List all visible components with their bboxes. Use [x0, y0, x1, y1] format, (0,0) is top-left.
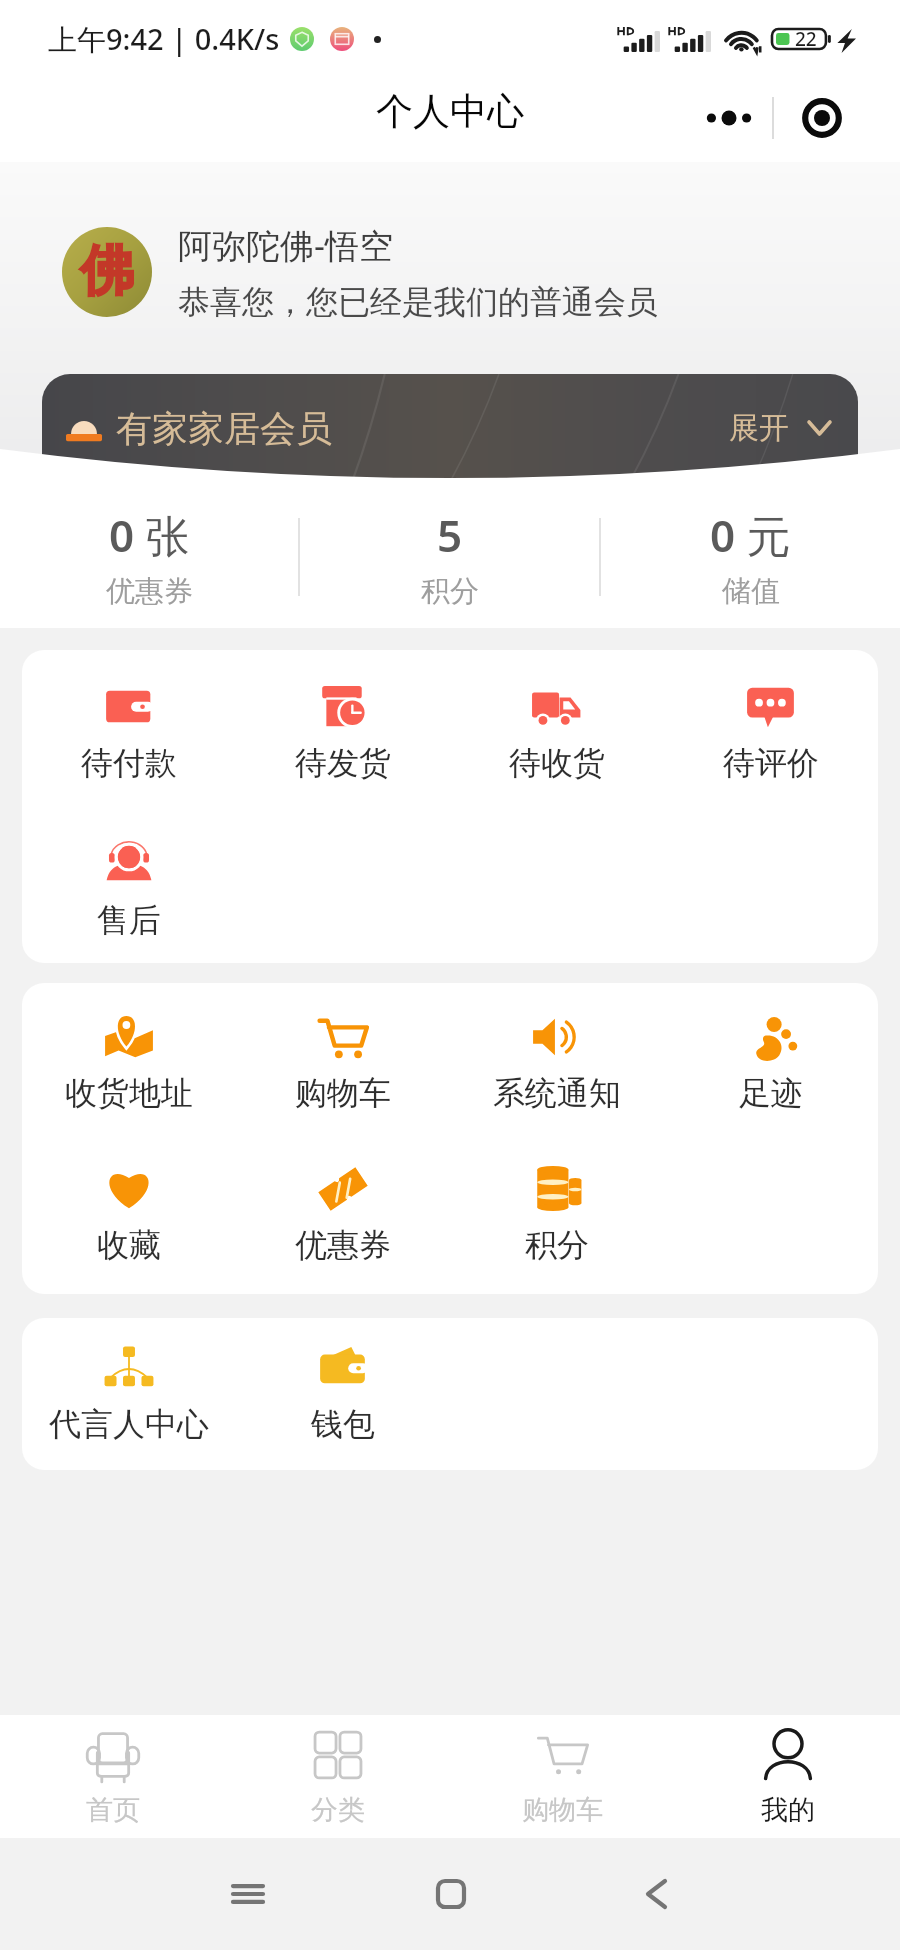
staticText: 上午9:42 | 0.4K/s — [48, 19, 280, 59]
button[interactable]: Recent apps — [188, 1838, 308, 1950]
button[interactable]: 0 元 — [601, 486, 900, 628]
staticText: 分类 — [311, 1793, 365, 1827]
button[interactable]: 代言人中心 — [22, 1344, 236, 1444]
staticText: 待收货 — [509, 743, 605, 783]
button[interactable]: 积分 — [450, 1165, 664, 1265]
staticText: 阿弥陀佛-悟空 — [178, 222, 393, 268]
button[interactable]: 待付款 — [22, 683, 236, 783]
button[interactable]: 优惠券 — [236, 1165, 450, 1265]
staticText: 我的 — [761, 1793, 815, 1827]
staticText: 有家家居会员 — [116, 406, 332, 451]
button[interactable]: Home — [391, 1838, 511, 1950]
button[interactable]: 我的 — [675, 1715, 900, 1838]
button[interactable]: 售后 — [22, 840, 236, 940]
button[interactable]: 分类 — [225, 1715, 450, 1838]
staticText: 待付款 — [81, 743, 177, 783]
staticText: 积分 — [421, 573, 479, 610]
staticText: 足迹 — [739, 1073, 803, 1113]
button[interactable]: 购物车 — [450, 1715, 675, 1838]
button[interactable]: 5 — [300, 486, 599, 628]
staticText: 首页 — [86, 1793, 140, 1827]
staticText: 优惠券 — [295, 1225, 391, 1265]
staticText: 展开 — [729, 409, 789, 447]
staticText: 代言人中心 — [49, 1404, 209, 1444]
staticText: 0 元 — [710, 505, 791, 565]
staticText: 0 张 — [109, 505, 190, 565]
button[interactable]: Back — [596, 1838, 716, 1950]
button[interactable]: 购物车 — [236, 1013, 450, 1113]
staticText: 储值 — [722, 573, 780, 610]
staticText: 系统通知 — [493, 1073, 621, 1113]
staticText: 待评价 — [723, 743, 819, 783]
staticText: 待发货 — [295, 743, 391, 783]
staticText: 钱包 — [311, 1404, 375, 1444]
button[interactable]: 待收货 — [450, 683, 664, 783]
button[interactable]: 收货地址 — [22, 1013, 236, 1113]
staticText: 售后 — [97, 900, 161, 940]
button[interactable]: 0 张 — [0, 486, 298, 628]
button[interactable]: Close mini program — [774, 82, 870, 154]
staticText: 佛 — [80, 237, 134, 305]
button[interactable]: 待发货 — [236, 683, 450, 783]
staticText: 购物车 — [295, 1073, 391, 1113]
staticText: 积分 — [525, 1225, 589, 1265]
button[interactable]: 钱包 — [236, 1344, 450, 1444]
button[interactable]: 待评价 — [664, 683, 878, 783]
button[interactable]: More options — [686, 82, 772, 154]
staticText: 收藏 — [97, 1225, 161, 1265]
staticText: 5 — [437, 505, 463, 565]
staticText: 个人中心 — [376, 88, 524, 135]
staticText: 收货地址 — [65, 1073, 193, 1113]
button[interactable]: 系统通知 — [450, 1013, 664, 1113]
button[interactable]: 收藏 — [22, 1165, 236, 1265]
staticText: 恭喜您，您已经是我们的普通会员 — [178, 282, 658, 322]
staticText: 优惠券 — [106, 573, 193, 610]
staticText: 22 — [795, 26, 817, 52]
button[interactable]: 首页 — [0, 1715, 225, 1838]
staticText: 购物车 — [522, 1793, 603, 1827]
button[interactable]: 足迹 — [664, 1013, 878, 1113]
